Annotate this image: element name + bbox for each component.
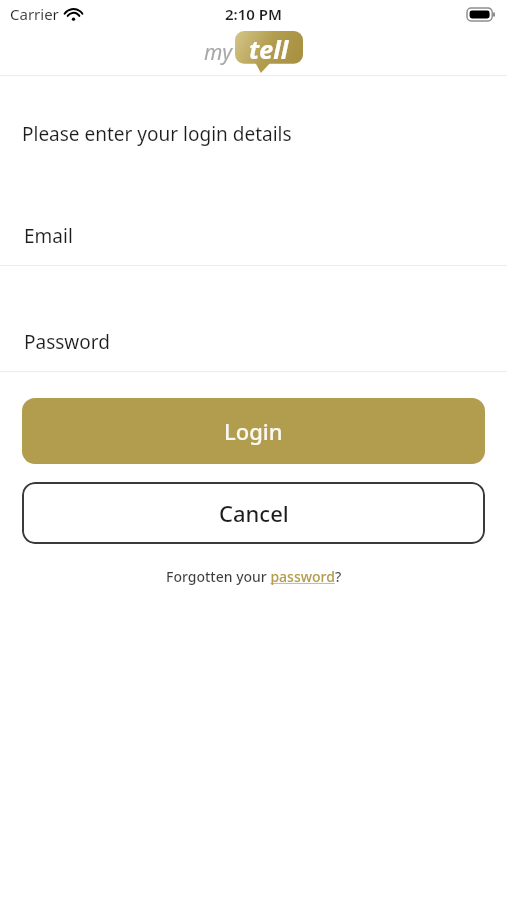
staticText: tell: [249, 32, 289, 66]
staticText: Login: [224, 416, 283, 446]
button[interactable]: Email: [0, 223, 507, 266]
staticText: Please enter your login details: [22, 121, 292, 147]
button[interactable]: Password: [0, 329, 507, 372]
button[interactable]: Login: [22, 398, 485, 464]
staticText: Forgotten your password?: [166, 567, 342, 586]
staticText: 2:10 PM: [225, 4, 282, 24]
button[interactable]: Forgotten your password?: [158, 564, 350, 589]
staticText: Cancel: [219, 498, 289, 528]
staticText: Password: [24, 329, 110, 355]
staticText: Email: [24, 223, 73, 249]
button[interactable]: Cancel: [22, 482, 485, 544]
staticText: my: [204, 38, 233, 67]
staticText: Carrier: [10, 4, 59, 24]
